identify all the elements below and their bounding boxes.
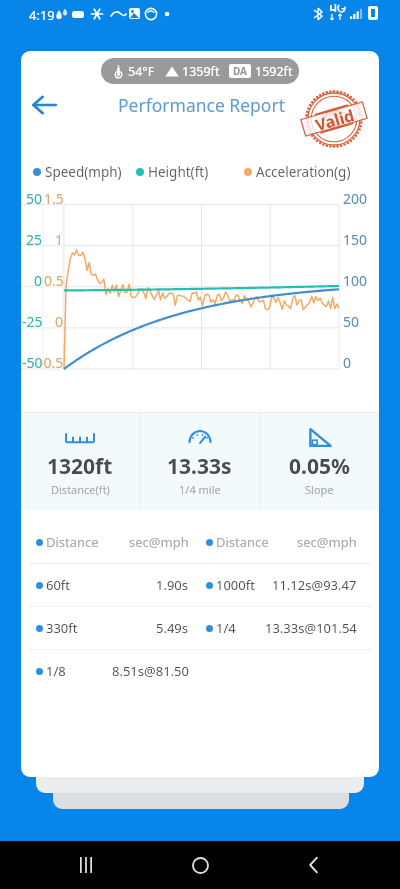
staticText: 1/8 xyxy=(46,662,66,680)
staticText: 50 xyxy=(26,189,43,207)
button[interactable]: 54°F xyxy=(101,58,299,84)
staticText: Distance xyxy=(46,533,99,551)
staticText: 13.33s xyxy=(167,452,232,481)
button[interactable]: 330ft xyxy=(21,607,379,649)
staticText: 1/4 mile xyxy=(179,482,221,497)
staticText: Height(ft) xyxy=(148,163,209,181)
staticText: 1592ft xyxy=(255,63,293,80)
staticText: 13.33s@101.54 xyxy=(265,619,357,637)
staticText: DA xyxy=(233,64,248,78)
staticText: 1 xyxy=(55,230,64,248)
button[interactable]: 1/8 xyxy=(21,650,379,692)
staticText: 330ft xyxy=(46,619,78,637)
staticText: 1320ft xyxy=(47,452,113,481)
staticText: 1000ft xyxy=(216,576,255,594)
staticText: 8.51s@81.50 xyxy=(112,662,189,680)
staticText: -25 xyxy=(22,312,43,330)
staticText: 4:19 xyxy=(29,6,55,24)
staticText: sec@mph xyxy=(129,533,189,551)
staticText: sec@mph xyxy=(297,533,357,551)
staticText: 25 xyxy=(26,230,43,248)
staticText: 1.5 xyxy=(44,189,64,207)
button[interactable]: Height(ft) xyxy=(136,161,209,183)
button[interactable]: Home xyxy=(172,841,228,889)
staticText: 0.05% xyxy=(289,452,350,481)
staticText: 0 xyxy=(55,312,64,330)
button[interactable]: Recents xyxy=(58,841,114,889)
staticText: Performance Report xyxy=(118,93,285,117)
staticText: 0 xyxy=(34,271,43,289)
button[interactable]: Back xyxy=(286,841,342,889)
button[interactable]: 60ft xyxy=(21,564,379,606)
staticText: 50 xyxy=(343,312,360,330)
staticText: 5.49s xyxy=(156,619,189,637)
button[interactable]: 0.05% xyxy=(260,412,379,510)
staticText: 150 xyxy=(343,230,368,248)
staticText: -50 xyxy=(22,353,43,371)
button[interactable]: 13.33s xyxy=(140,412,259,510)
button[interactable]: Speed(mph) xyxy=(33,161,122,183)
staticText: 1.90s xyxy=(156,576,189,594)
button[interactable]: 1320ft xyxy=(21,412,139,510)
staticText: Valid xyxy=(313,104,357,136)
button[interactable]: Back xyxy=(21,82,67,128)
staticText: Distance(ft) xyxy=(51,482,110,497)
staticText: 100 xyxy=(343,271,368,289)
staticText: 0.5 xyxy=(44,271,64,289)
staticText: 1/4 xyxy=(216,619,236,637)
staticText: Slope xyxy=(305,482,334,497)
staticText: Distance xyxy=(216,533,269,551)
staticText: -0.5 xyxy=(39,353,64,371)
staticText: 1359ft xyxy=(182,63,220,80)
staticText: Acceleration(g) xyxy=(256,163,351,181)
staticText: 0 xyxy=(343,353,352,371)
staticText: 11.12s@93.47 xyxy=(272,576,357,594)
staticText: 54°F xyxy=(128,63,155,80)
button[interactable]: Acceleration(g) xyxy=(244,161,351,183)
staticText: 200 xyxy=(343,189,368,207)
button[interactable]: Distance xyxy=(21,521,379,563)
staticText: Speed(mph) xyxy=(45,163,122,181)
staticText: 60ft xyxy=(46,576,71,594)
